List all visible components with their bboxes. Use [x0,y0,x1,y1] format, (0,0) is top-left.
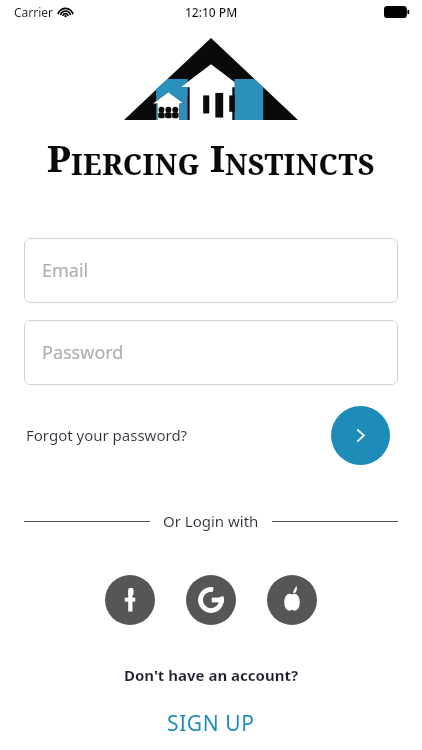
staticText: P [47,134,71,183]
staticText: Or Login with [163,511,259,531]
button[interactable]: Email [24,238,398,303]
button[interactable]: Password [24,320,398,385]
button[interactable]: Sign in with Google [186,575,236,625]
button[interactable]: Log in [331,406,390,465]
staticText: Email [42,258,89,283]
staticText: 12:10 PM [185,4,238,20]
other: Piercing Instincts logo [124,38,298,120]
button[interactable]: Sign in with Facebook [105,575,155,625]
button[interactable]: SIGN UP [157,706,265,741]
staticText: Don't have an account? [0,665,422,685]
button[interactable]: Forgot your password? [24,421,190,449]
staticText: SIGN UP [167,709,255,738]
staticText: IERCING [71,145,201,183]
staticText: Forgot your password? [26,425,188,445]
button[interactable]: Sign in with Apple [267,575,317,625]
staticText: I [210,134,225,183]
staticText: Carrier [14,4,54,20]
staticText: NSTINCTS [225,145,375,183]
staticText: Password [42,340,124,365]
